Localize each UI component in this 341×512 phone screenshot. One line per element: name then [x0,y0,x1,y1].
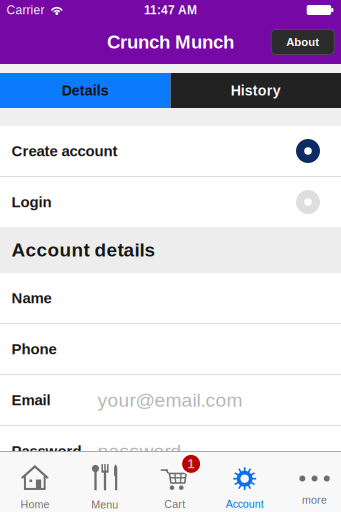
button[interactable]: Home [0,452,70,512]
staticText: History [231,83,281,98]
staticText: Crunch Munch [107,32,234,52]
staticText: 1 [188,457,195,471]
staticText: Create account [11,143,117,159]
button[interactable]: Details [0,73,170,108]
button[interactable]: Menu [70,452,140,512]
button[interactable]: Cart [140,452,210,512]
staticText: Details [62,83,109,98]
staticText: Home [20,498,49,510]
staticText: Menu [91,499,118,511]
staticText: password [97,440,181,462]
staticText: Cart [164,498,185,510]
staticText: Account [226,498,264,510]
button[interactable]: Login [0,177,341,227]
staticText: 11:47 AM [144,3,197,17]
staticText: Name [11,290,51,306]
button[interactable]: Account [210,452,280,512]
button[interactable]: Create account [0,126,341,176]
button[interactable]: About [271,29,334,54]
staticText: Account details [11,239,155,261]
staticText: Carrier [7,3,45,17]
staticText: your@email.com [97,389,242,411]
staticText: Password [11,443,81,459]
staticText: more [302,494,327,506]
button[interactable]: more [280,452,341,512]
button[interactable]: History [170,73,341,108]
staticText: Phone [11,341,56,357]
staticText: Email [11,392,50,408]
staticText: About [286,36,319,48]
staticText: Login [11,194,51,210]
